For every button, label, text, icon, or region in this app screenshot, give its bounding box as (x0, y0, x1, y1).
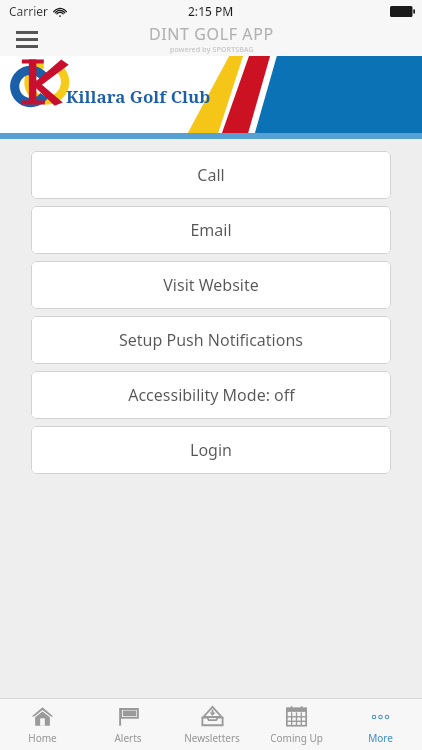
button[interactable]: Menu (10, 24, 44, 54)
staticText: Coming Up (270, 731, 323, 745)
button[interactable]: Setup Push Notifications (31, 316, 391, 364)
button[interactable]: More (338, 699, 422, 750)
staticText: Newsletters (184, 731, 240, 745)
staticText: Killara Golf Club (66, 85, 211, 108)
button[interactable]: Login (31, 426, 391, 474)
staticText: More (368, 731, 393, 745)
button[interactable]: Home (0, 699, 85, 750)
button[interactable]: Coming Up (254, 699, 338, 750)
staticText: Login (190, 439, 232, 461)
button[interactable]: Call (31, 151, 391, 199)
staticText: Home (28, 731, 57, 745)
staticText: Accessibility Mode: off (128, 384, 295, 406)
staticText: powered by SPORTSBAG (170, 45, 254, 55)
button[interactable]: Newsletters (170, 699, 254, 750)
staticText: DINT GOLF APP (149, 23, 274, 45)
button[interactable]: Email (31, 206, 391, 254)
button[interactable]: Accessibility Mode: off (31, 371, 391, 419)
staticText: Alerts (114, 731, 142, 745)
staticText: 2:15 PM (188, 3, 234, 19)
staticText: Carrier (9, 3, 49, 19)
staticText: Email (190, 219, 232, 241)
staticText: Visit Website (163, 274, 259, 296)
staticText: Call (197, 164, 225, 186)
button[interactable]: Visit Website (31, 261, 391, 309)
button[interactable]: Alerts (85, 699, 170, 750)
staticText: Setup Push Notifications (119, 329, 303, 351)
